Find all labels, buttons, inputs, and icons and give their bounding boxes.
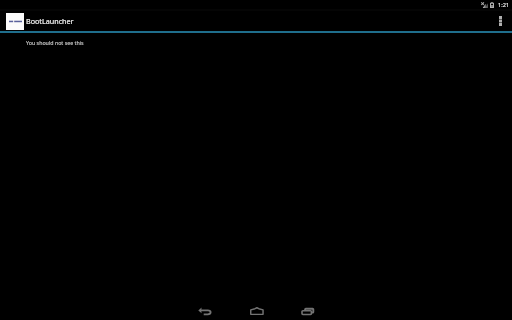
button[interactable]: More options (489, 11, 511, 31)
staticText: You should not see this (26, 39, 84, 46)
staticText: 1:21 (498, 1, 510, 7)
button[interactable]: Recent apps (289, 303, 326, 320)
button[interactable]: Back (187, 303, 224, 320)
button[interactable]: BootLauncher (0, 11, 78, 31)
button[interactable]: Home (238, 303, 275, 320)
staticText: BootLauncher (26, 16, 74, 26)
